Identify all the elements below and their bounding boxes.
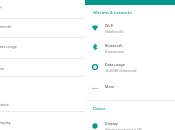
other: Bluetooth bbox=[92, 44, 98, 50]
staticText: Bluetooth bbox=[105, 43, 123, 48]
button[interactable]: Bluetooth bbox=[85, 43, 175, 58]
other: Data usage bbox=[92, 64, 98, 70]
staticText: Device bbox=[93, 106, 106, 111]
staticText: Bluetooth bbox=[0, 24, 12, 29]
staticText: More bbox=[0, 66, 5, 71]
staticText: Wireless & networks bbox=[93, 10, 132, 15]
staticText: Data usage bbox=[0, 44, 17, 49]
staticText: Disconnected bbox=[105, 50, 125, 54]
staticText: Display bbox=[105, 121, 118, 126]
staticText: Wi-Fi bbox=[0, 5, 2, 10]
other: Wi-Fi bbox=[92, 25, 98, 31]
staticText: Device bbox=[0, 102, 9, 107]
button[interactable]: More bbox=[85, 84, 175, 96]
staticText: Data usage bbox=[105, 62, 125, 67]
other: Display bbox=[92, 123, 98, 129]
staticText: Wi-Fi bbox=[105, 23, 114, 28]
staticText: Display bbox=[0, 120, 11, 125]
button[interactable]: Data usage bbox=[85, 62, 175, 77]
staticText: Vodafone-5G bbox=[105, 30, 124, 34]
button[interactable]: Wi-Fi bbox=[85, 23, 175, 38]
button[interactable]: Display bbox=[85, 121, 175, 130]
staticText: More bbox=[105, 84, 115, 89]
staticText: 33.46 MB of data used bbox=[105, 69, 137, 73]
staticText: Adaptive brightness is ON bbox=[105, 128, 142, 130]
other: More bbox=[92, 85, 98, 91]
